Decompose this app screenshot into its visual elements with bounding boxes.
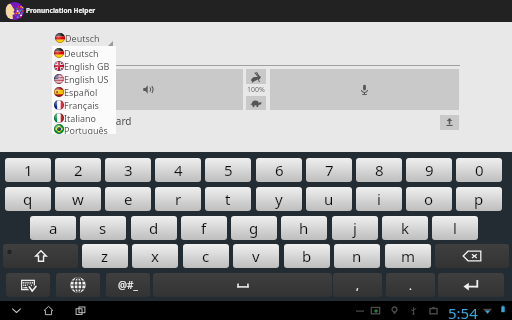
- staticText: v: [252, 246, 260, 266]
- button[interactable]: English GB: [52, 59, 116, 72]
- staticText: g: [249, 218, 259, 238]
- button[interactable]: n: [334, 244, 380, 268]
- staticText: n: [352, 246, 362, 266]
- button[interactable]: 9: [406, 158, 452, 182]
- staticText: 4: [174, 160, 183, 180]
- staticText: Deutsch: [64, 47, 99, 59]
- staticText: t: [225, 189, 231, 209]
- staticText: o: [424, 189, 434, 209]
- button[interactable]: 2: [55, 158, 101, 182]
- staticText: 3: [124, 160, 133, 180]
- button[interactable]: 0: [456, 158, 502, 182]
- button[interactable]: Share: [440, 115, 459, 130]
- button[interactable]: Slower: [246, 96, 266, 110]
- staticText: a: [49, 218, 58, 238]
- button[interactable]: x: [132, 244, 178, 268]
- button[interactable]: m: [385, 244, 431, 268]
- button[interactable]: ,: [333, 273, 382, 297]
- staticText: Clipboard: [86, 114, 132, 128]
- button[interactable]: f: [181, 216, 227, 240]
- staticText: English GB: [64, 60, 110, 72]
- button[interactable]: b: [284, 244, 330, 268]
- staticText: @#_: [118, 278, 138, 292]
- button[interactable]: 3: [105, 158, 151, 182]
- button[interactable]: 1: [5, 158, 51, 182]
- button[interactable]: Enter: [438, 273, 504, 297]
- button[interactable]: o: [406, 187, 452, 211]
- staticText: p: [474, 189, 484, 209]
- staticText: b: [302, 246, 312, 266]
- button[interactable]: Record: [270, 69, 459, 110]
- button[interactable]: Backspace: [435, 244, 509, 268]
- button[interactable]: Play: [53, 69, 243, 110]
- button[interactable]: v: [233, 244, 279, 268]
- button[interactable]: t: [205, 187, 251, 211]
- button[interactable]: i: [356, 187, 402, 211]
- button[interactable]: s: [80, 216, 126, 240]
- other: App icon: [5, 2, 24, 20]
- button[interactable]: w: [55, 187, 101, 211]
- button[interactable]: Faster: [246, 69, 266, 84]
- staticText: j: [353, 218, 357, 238]
- button[interactable]: c: [183, 244, 229, 268]
- button[interactable]: 4: [155, 158, 201, 182]
- staticText: Italiano: [64, 112, 97, 124]
- staticText: .: [409, 278, 412, 293]
- staticText: Pronunciation Helper: [26, 6, 96, 15]
- button[interactable]: e: [105, 187, 151, 211]
- button[interactable]: y: [256, 187, 302, 211]
- button[interactable]: 8: [356, 158, 402, 182]
- button[interactable]: 5: [205, 158, 251, 182]
- staticText: e: [124, 189, 133, 209]
- staticText: 8: [375, 160, 384, 180]
- button[interactable]: Deutsch: [52, 31, 117, 45]
- button[interactable]: Español: [52, 85, 116, 98]
- staticText: s: [99, 218, 107, 238]
- staticText: Português: [64, 124, 108, 134]
- staticText: 100%: [247, 85, 265, 95]
- button[interactable]: l: [432, 216, 478, 240]
- staticText: w: [72, 189, 84, 209]
- staticText: Español: [64, 86, 98, 98]
- button[interactable]: .: [386, 273, 435, 297]
- button[interactable]: a: [30, 216, 76, 240]
- button[interactable]: u: [306, 187, 352, 211]
- button[interactable]: p: [456, 187, 502, 211]
- staticText: f: [201, 218, 207, 238]
- button[interactable]: g: [231, 216, 277, 240]
- button[interactable]: English US: [52, 72, 116, 85]
- button[interactable]: Português: [52, 124, 116, 134]
- button[interactable]: Recent apps: [69, 301, 91, 320]
- button[interactable]: Home: [37, 301, 59, 320]
- staticText: c: [202, 246, 210, 266]
- button[interactable]: Deutsch: [52, 46, 116, 59]
- button[interactable]: j: [332, 216, 378, 240]
- button[interactable]: @#_: [106, 273, 150, 297]
- staticText: 7: [325, 160, 334, 180]
- button[interactable]: 6: [256, 158, 302, 182]
- button[interactable]: k: [382, 216, 428, 240]
- staticText: l: [453, 218, 457, 238]
- button[interactable]: Français: [52, 98, 116, 111]
- staticText: i: [377, 189, 381, 209]
- button[interactable]: d: [131, 216, 177, 240]
- button[interactable]: Space: [153, 273, 332, 297]
- button[interactable]: Change language: [56, 273, 100, 297]
- button[interactable]: z: [82, 244, 128, 268]
- button[interactable]: Status and time: [352, 301, 512, 320]
- staticText: y: [275, 189, 283, 209]
- staticText: z: [101, 246, 109, 266]
- button[interactable]: Italiano: [52, 111, 116, 124]
- button[interactable]: Back: [5, 301, 27, 320]
- button[interactable]: h: [281, 216, 327, 240]
- button[interactable]: 7: [306, 158, 352, 182]
- button[interactable]: Hide keyboard: [6, 273, 50, 297]
- staticText: d: [149, 218, 159, 238]
- button[interactable]: r: [155, 187, 201, 211]
- staticText: Français: [64, 99, 99, 111]
- staticText: q: [23, 189, 33, 209]
- button[interactable]: q: [5, 187, 51, 211]
- button[interactable]: Shift: [3, 244, 78, 268]
- staticText: u: [324, 189, 334, 209]
- staticText: 5:54: [448, 303, 478, 320]
